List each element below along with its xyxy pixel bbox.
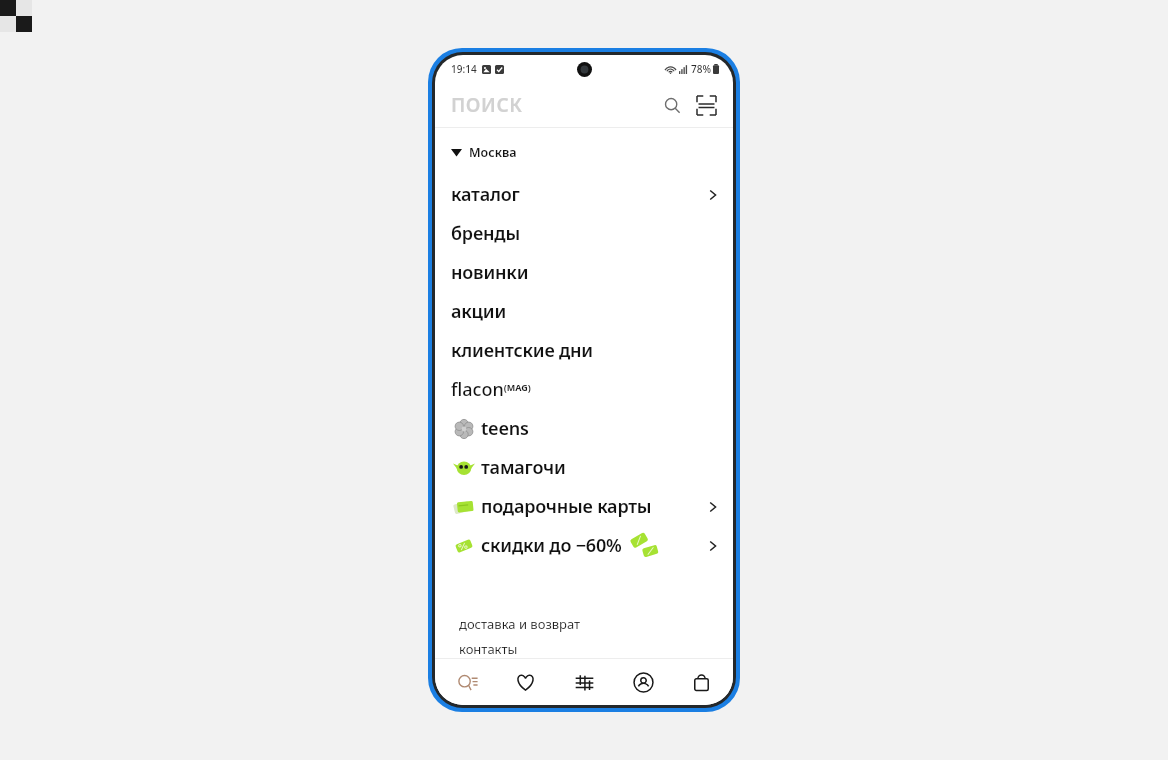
button[interactable]: бренды — [435, 214, 733, 253]
staticText: Москва — [469, 144, 517, 161]
staticText: бренды — [451, 221, 520, 246]
button[interactable]: Москва — [435, 142, 733, 163]
staticText: клиентские дни — [451, 338, 593, 363]
staticText: каталог — [451, 182, 520, 207]
staticText: teens — [481, 416, 529, 441]
button[interactable]: каталог — [435, 175, 733, 214]
staticText: доставка и возврат — [459, 615, 581, 633]
staticText: скидки до −60% — [481, 533, 622, 558]
button[interactable]: доставка и возврат — [459, 608, 733, 640]
staticText: подарочные карты — [481, 494, 652, 519]
button[interactable]: новинки — [435, 253, 733, 292]
staticText: тамагочи — [481, 455, 566, 480]
button[interactable]: Profile — [616, 659, 670, 705]
button[interactable]: Cart — [674, 659, 728, 705]
button[interactable]: Поиск — [435, 83, 733, 127]
button[interactable]: Compare — [557, 659, 611, 705]
button[interactable]: Scan barcode — [693, 92, 719, 118]
button[interactable]: flacon(MAG) — [435, 370, 733, 409]
button[interactable]: клиентские дни — [435, 331, 733, 370]
button[interactable]: teens — [435, 409, 733, 448]
staticText: ПОИСК — [451, 92, 523, 118]
button[interactable]: подарочные карты — [435, 487, 733, 526]
staticText: 78% — [691, 62, 711, 76]
staticText: акции — [451, 299, 506, 324]
staticText: контакты — [459, 640, 518, 658]
button[interactable]: скидки до −60% — [435, 526, 733, 565]
staticText: flacon(MAG) — [451, 377, 531, 402]
button[interactable]: Search — [440, 659, 494, 705]
button[interactable]: акции — [435, 292, 733, 331]
staticText: 19:14 — [451, 62, 477, 76]
staticText: новинки — [451, 260, 529, 285]
button[interactable]: Search — [659, 92, 685, 118]
button[interactable]: контакты — [459, 640, 733, 658]
button[interactable]: Favorites — [498, 659, 552, 705]
button[interactable]: тамагочи — [435, 448, 733, 487]
